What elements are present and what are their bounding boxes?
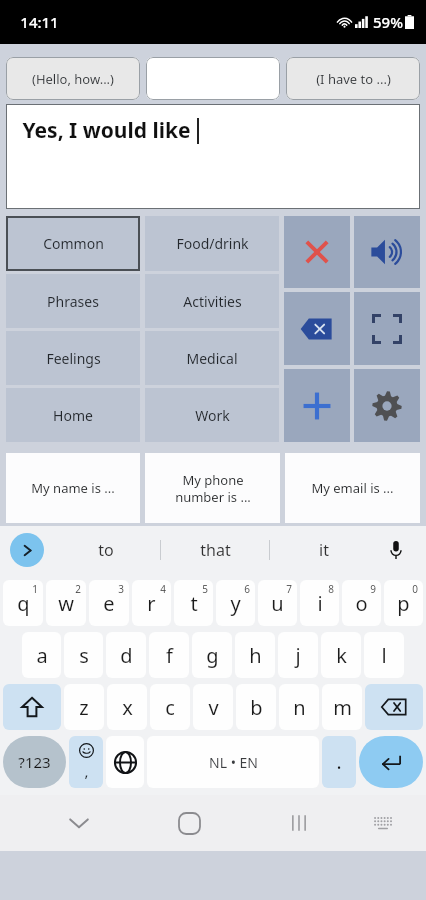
button[interactable]: it (270, 526, 378, 574)
button[interactable]: Fullscreen (354, 292, 420, 365)
button[interactable]: o (342, 580, 381, 626)
button[interactable]: p (384, 580, 423, 626)
staticText: 5 (202, 582, 208, 596)
button[interactable]: Medical (145, 331, 279, 385)
button[interactable]: My phone number is ... (145, 453, 280, 523)
button[interactable]: u (258, 580, 297, 626)
button[interactable]: n (279, 684, 319, 730)
button[interactable]: s (64, 632, 103, 678)
button[interactable]: g (192, 632, 232, 678)
button[interactable]: Backspace (284, 292, 350, 365)
button[interactable]: Hide keyboard (55, 799, 103, 847)
button[interactable]: x (107, 684, 147, 730)
staticText: (I have to ...) (316, 70, 391, 88)
staticText: c (165, 694, 175, 721)
button[interactable]: (I have to ...) (286, 57, 420, 100)
button[interactable]: Backspace (365, 684, 423, 730)
button[interactable]: c (150, 684, 190, 730)
button[interactable]: Home (165, 799, 213, 847)
button[interactable]: Change language (106, 736, 144, 788)
staticText: (Hello, how...) (32, 70, 114, 88)
button[interactable]: Activities (145, 274, 279, 328)
button[interactable]: Work (145, 388, 279, 442)
staticText: s (79, 642, 89, 669)
button[interactable]: Food/drink (145, 216, 279, 271)
button[interactable]: NL • EN (147, 736, 319, 788)
staticText: ?123 (18, 752, 51, 772)
button[interactable]: Phrases (6, 274, 140, 328)
button[interactable]: d (106, 632, 146, 678)
button[interactable]: y (216, 580, 255, 626)
staticText: m (333, 694, 352, 721)
staticText: Home (53, 406, 93, 425)
button[interactable]: Keyboard settings (361, 801, 405, 845)
button[interactable]: Home (6, 388, 140, 442)
staticText: b (250, 694, 263, 721)
staticText: j (295, 642, 301, 669)
staticText: . (336, 749, 342, 775)
button[interactable]: Yes, I would like (6, 104, 420, 209)
staticText: Work (195, 406, 230, 425)
staticText: r (147, 590, 156, 617)
staticText: 3 (118, 582, 124, 596)
button[interactable]: Add (284, 369, 350, 442)
button[interactable]: Voice input (378, 532, 414, 568)
button[interactable]: that (161, 526, 269, 574)
button[interactable]: More suggestions (10, 533, 44, 567)
button[interactable]: z (64, 684, 104, 730)
staticText: i (317, 590, 323, 617)
button[interactable]: r (132, 580, 171, 626)
button[interactable]: Shift (3, 684, 61, 730)
button[interactable]: Clear (284, 216, 350, 288)
button[interactable]: j (278, 632, 318, 678)
button[interactable]: to (52, 526, 160, 574)
staticText: n (293, 694, 306, 721)
button[interactable]: . (322, 736, 356, 788)
button[interactable]: My email is ... (285, 453, 420, 523)
button[interactable]: ?123 (3, 736, 66, 788)
button[interactable]: b (236, 684, 276, 730)
button[interactable]: i (300, 580, 339, 626)
staticText: 0 (412, 582, 418, 596)
staticText: 59% (373, 12, 403, 32)
staticText: NL • EN (209, 753, 258, 772)
button[interactable]: Enter (359, 736, 423, 788)
button[interactable]: h (235, 632, 275, 678)
staticText: q (17, 590, 30, 617)
button[interactable]: e (89, 580, 129, 626)
staticText: g (206, 642, 219, 669)
staticText: k (336, 642, 347, 669)
staticText: x (122, 694, 133, 721)
button[interactable] (146, 57, 280, 100)
button[interactable]: f (149, 632, 189, 678)
button[interactable]: Common (6, 216, 140, 271)
button[interactable]: q (3, 580, 43, 626)
staticText: it (319, 539, 329, 561)
button[interactable]: k (321, 632, 361, 678)
staticText: Medical (186, 349, 238, 368)
button[interactable]: Feelings (6, 331, 140, 385)
button[interactable]: l (364, 632, 404, 678)
button[interactable]: Emoji and comma (69, 736, 103, 788)
button[interactable]: (Hello, how...) (6, 57, 140, 100)
button[interactable]: Speak (354, 216, 420, 288)
button[interactable]: v (193, 684, 233, 730)
button[interactable]: Recent apps (275, 799, 323, 847)
staticText: , (84, 761, 89, 781)
button[interactable]: m (322, 684, 362, 730)
button[interactable]: Settings (354, 369, 420, 442)
button[interactable]: a (22, 632, 61, 678)
staticText: u (271, 590, 284, 617)
staticText: w (58, 590, 74, 617)
staticText: 9 (370, 582, 376, 596)
staticText: y (230, 590, 241, 617)
staticText: t (190, 590, 198, 617)
staticText: 7 (286, 582, 292, 596)
staticText: to (98, 539, 114, 561)
button[interactable]: w (46, 580, 86, 626)
button[interactable]: t (174, 580, 213, 626)
staticText: o (355, 590, 368, 617)
staticText: My name is ... (31, 479, 115, 497)
button[interactable]: My name is ... (6, 453, 140, 523)
staticText: Food/drink (176, 234, 249, 253)
